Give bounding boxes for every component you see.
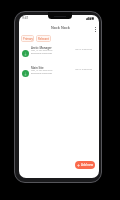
staticText: Arctic Manager	[31, 46, 52, 50]
staticText: Mon, 14 Nov 2022 09:30	[31, 49, 53, 52]
button[interactable]: Main Site	[19, 65, 99, 84]
button[interactable]: Add new	[75, 161, 95, 169]
button[interactable]: Primary	[21, 35, 34, 42]
staticText: 9:41	[22, 16, 29, 20]
button[interactable]: Relevant	[36, 35, 51, 42]
staticText: Nov 14 at 09:30 am	[75, 68, 93, 71]
staticText: Mon, 14 Nov 2022 09:30	[31, 69, 53, 72]
staticText: Everything stands well	[31, 52, 53, 55]
button[interactable]: More options	[91, 25, 99, 33]
staticText: Primary	[23, 37, 33, 41]
button[interactable]: Arctic Manager	[19, 45, 99, 64]
staticText: Add new	[81, 163, 93, 167]
staticText: Main Site	[31, 66, 44, 70]
staticText: Nov 14 at 09:30 am	[75, 48, 93, 51]
staticText: Everything stands well	[31, 72, 53, 75]
staticText: Relevant	[38, 37, 49, 41]
staticText: Nock Nock	[51, 25, 70, 30]
